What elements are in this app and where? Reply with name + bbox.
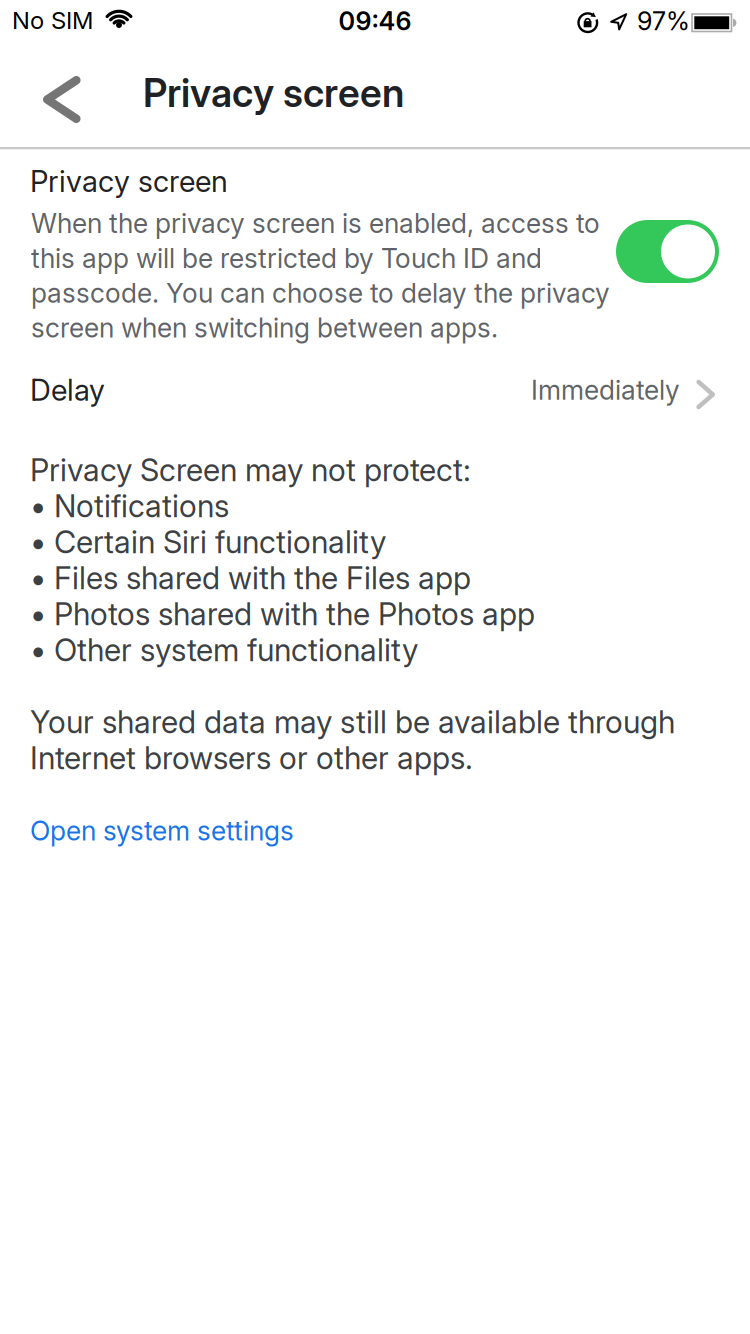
button[interactable]: Privacy screen — [616, 220, 719, 283]
staticText: Certain Siri functionality — [54, 524, 386, 560]
staticText: Files shared with the Files app — [54, 560, 471, 596]
staticText: • — [30, 596, 46, 632]
staticText: Open system settings — [30, 815, 294, 846]
staticText: Notifications — [54, 488, 229, 524]
staticText: Delay — [30, 373, 105, 407]
staticText: • — [30, 560, 46, 596]
staticText: No SIM — [12, 6, 93, 34]
staticText: passcode. You can choose to delay the pr… — [31, 277, 610, 309]
staticText: this app will be restricted by Touch ID … — [31, 242, 542, 274]
staticText: Privacy Screen may not protect: — [30, 452, 471, 488]
staticText: Immediately — [531, 374, 680, 406]
staticText: When the privacy screen is enabled, acce… — [31, 208, 600, 239]
staticText: 09:46 — [338, 6, 411, 36]
staticText: screen when switching between apps. — [31, 312, 498, 344]
staticText: • — [30, 632, 46, 668]
button[interactable]: Open system settings — [30, 815, 294, 846]
staticText: Internet browsers or other apps. — [30, 740, 473, 776]
button[interactable]: Back — [43, 76, 81, 123]
staticText: 97% — [637, 6, 690, 36]
staticText: Other system functionality — [54, 632, 418, 668]
button[interactable]: Delay — [30, 355, 715, 425]
staticText: Photos shared with the Photos app — [54, 596, 535, 632]
staticText: Privacy screen — [143, 70, 404, 116]
staticText: Your shared data may still be available … — [30, 704, 675, 740]
staticText: • — [30, 488, 46, 524]
staticText: Privacy screen — [30, 164, 228, 199]
staticText: • — [30, 524, 46, 560]
